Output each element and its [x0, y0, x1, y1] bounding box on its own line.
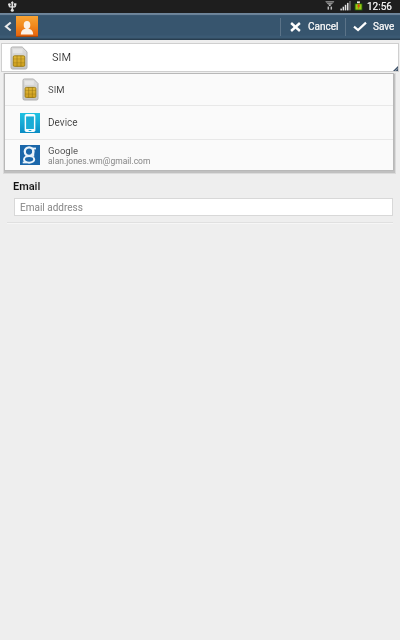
staticText: SIM [52, 51, 72, 64]
staticText: Cancel [308, 21, 339, 33]
button[interactable]: Back [0, 13, 16, 40]
button[interactable]: Cancel [281, 13, 345, 40]
button[interactable]: SIM [4, 73, 394, 105]
staticText: alan.jones.wm@gmail.com [48, 156, 151, 166]
button[interactable]: SIM [1, 43, 399, 72]
button[interactable]: Email address [14, 198, 393, 216]
staticText: Email [13, 180, 41, 193]
staticText: Device [48, 117, 78, 129]
staticText: Google [48, 145, 78, 156]
button[interactable]: Google [4, 140, 394, 170]
staticText: 12:56 [367, 1, 392, 13]
button[interactable]: Contacts [16, 16, 38, 37]
button[interactable]: Device [4, 106, 394, 139]
staticText: Save [373, 21, 395, 33]
button[interactable]: Save [346, 13, 400, 40]
staticText: SIM [48, 84, 65, 95]
staticText: Email address [20, 202, 83, 214]
